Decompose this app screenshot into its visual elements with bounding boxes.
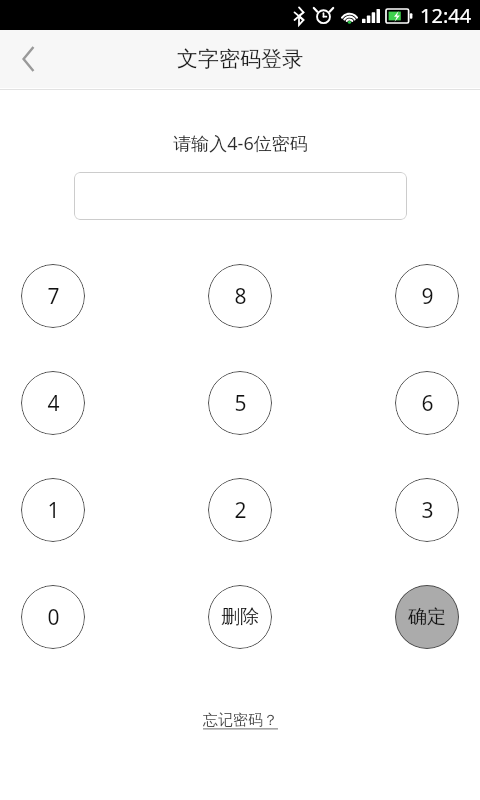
staticText: 4 [47, 389, 60, 418]
staticText: 请输入4-6位密码 [173, 131, 308, 156]
button[interactable]: 5 [208, 371, 272, 435]
staticText: 3 [421, 496, 434, 525]
staticText: 6 [421, 389, 434, 418]
staticText: 删除 [221, 605, 259, 629]
staticText: 8 [234, 282, 247, 311]
button[interactable]: 6 [395, 371, 459, 435]
button[interactable]: Password input [74, 172, 407, 220]
button[interactable]: 忘记密码？ [191, 705, 290, 736]
staticText: 9 [421, 282, 434, 311]
button[interactable]: 1 [21, 478, 85, 542]
button[interactable]: 0 [21, 585, 85, 649]
staticText: 12:44 [420, 2, 472, 29]
button[interactable]: 4 [21, 371, 85, 435]
button[interactable]: 3 [395, 478, 459, 542]
staticText: 确定 [408, 605, 446, 629]
button[interactable]: 确定 [395, 585, 459, 649]
button[interactable]: 8 [208, 264, 272, 328]
staticText: 0 [47, 603, 60, 632]
button[interactable]: 9 [395, 264, 459, 328]
staticText: 1 [47, 496, 60, 525]
button[interactable]: 2 [208, 478, 272, 542]
staticText: 忘记密码？ [203, 711, 278, 730]
staticText: 7 [47, 282, 60, 311]
staticText: 2 [234, 496, 247, 525]
button[interactable]: 删除 [208, 585, 272, 649]
staticText: 5 [234, 389, 247, 418]
staticText: 文字密码登录 [177, 46, 303, 72]
button[interactable]: Back [0, 31, 56, 87]
button[interactable]: 7 [21, 264, 85, 328]
